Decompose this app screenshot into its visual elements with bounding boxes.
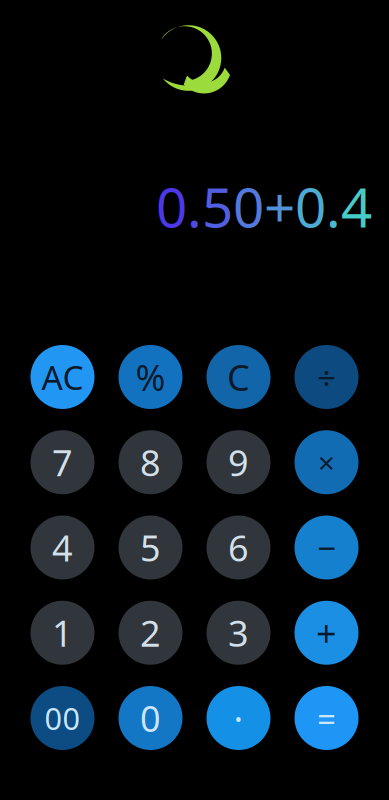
- staticText: 5: [202, 170, 233, 243]
- staticText: 7: [52, 438, 73, 486]
- staticText: +: [316, 609, 337, 657]
- button[interactable]: 9: [206, 430, 270, 494]
- button[interactable]: C: [206, 345, 270, 409]
- button[interactable]: AC: [30, 345, 94, 409]
- button[interactable]: 00: [30, 686, 94, 750]
- staticText: .: [187, 170, 202, 243]
- staticText: %: [135, 353, 165, 401]
- staticText: AC: [41, 355, 83, 399]
- staticText: 2: [140, 609, 161, 657]
- staticText: 3: [228, 609, 249, 657]
- staticText: 0: [140, 694, 161, 742]
- button[interactable]: %: [118, 345, 182, 409]
- button[interactable]: 2: [118, 601, 182, 665]
- staticText: 6: [228, 524, 249, 571]
- button[interactable]: ÷: [294, 345, 358, 409]
- staticText: 00: [44, 698, 80, 738]
- button[interactable]: 5: [118, 515, 182, 579]
- staticText: ×: [318, 443, 335, 482]
- button[interactable]: 4: [30, 515, 94, 579]
- staticText: C: [227, 353, 250, 401]
- button[interactable]: 1: [30, 601, 94, 665]
- staticText: 0: [233, 170, 264, 243]
- button[interactable]: =: [294, 686, 358, 750]
- staticText: .: [326, 170, 341, 243]
- button[interactable]: 6: [206, 515, 270, 579]
- button[interactable]: ×: [294, 430, 358, 494]
- button[interactable]: +: [294, 601, 358, 665]
- staticText: 0: [295, 170, 326, 243]
- staticText: 5: [140, 524, 161, 571]
- staticText: +: [264, 170, 295, 243]
- staticText: 4: [52, 524, 73, 571]
- staticText: −: [317, 525, 336, 570]
- staticText: 1: [52, 609, 73, 657]
- staticText: 8: [140, 438, 161, 486]
- staticText: 9: [228, 438, 249, 486]
- button[interactable]: ·: [206, 686, 270, 750]
- staticText: 0: [156, 170, 187, 243]
- staticText: ÷: [317, 355, 336, 399]
- button[interactable]: 0: [118, 686, 182, 750]
- button[interactable]: −: [294, 515, 358, 579]
- staticText: ·: [233, 694, 243, 742]
- staticText: 4: [341, 170, 372, 243]
- button[interactable]: 3: [206, 601, 270, 665]
- button[interactable]: 8: [118, 430, 182, 494]
- button[interactable]: 7: [30, 430, 94, 494]
- staticText: =: [317, 696, 336, 740]
